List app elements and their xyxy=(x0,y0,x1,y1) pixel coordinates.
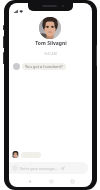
button[interactable]: Home xyxy=(47,177,55,185)
staticText: You got a (condom)? xyxy=(25,64,63,69)
button[interactable]: You got a (condom)? xyxy=(22,63,66,70)
staticText: Enter your message... xyxy=(20,166,58,171)
button[interactable]: Recents xyxy=(68,177,76,185)
button[interactable] xyxy=(21,152,41,158)
button[interactable]: Back xyxy=(25,177,33,185)
button[interactable]: Profile photo xyxy=(39,17,61,39)
button[interactable]: Send xyxy=(59,165,66,172)
staticText: 9:41 AM xyxy=(44,52,57,56)
staticText: Tom Silvagni xyxy=(35,40,67,47)
